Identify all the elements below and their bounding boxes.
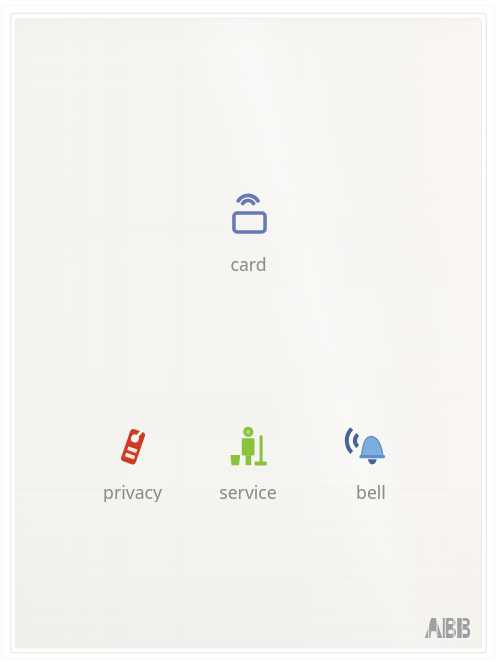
button[interactable]: service: [188, 414, 308, 504]
staticText: privacy: [103, 480, 162, 502]
other: ABB glass switch panel: [0, 0, 496, 663]
button[interactable]: bell: [311, 412, 431, 504]
button[interactable]: card: [188, 182, 308, 276]
staticText: service: [219, 480, 277, 502]
staticText: card: [230, 252, 267, 274]
staticText: bell: [356, 480, 386, 502]
other: ABB logo: [425, 618, 472, 638]
button[interactable]: privacy: [72, 414, 192, 504]
